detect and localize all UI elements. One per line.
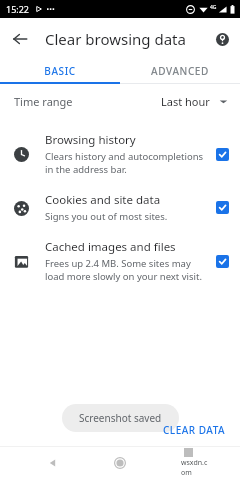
staticText: BASIC — [44, 64, 76, 78]
staticText: Signs you out of most sites. — [45, 210, 168, 223]
staticText: Last hour — [161, 94, 210, 109]
button[interactable]: Checked — [216, 201, 229, 214]
staticText: Clear browsing data — [45, 29, 186, 49]
staticText: in the address bar. — [45, 163, 127, 176]
button[interactable]: Browsing history — [0, 124, 240, 184]
staticText: 4G — [210, 4, 217, 11]
button[interactable]: Time range — [0, 84, 240, 118]
button[interactable]: Home — [105, 448, 135, 478]
staticText: Cookies and site data — [45, 192, 161, 208]
button[interactable]: BASIC — [0, 60, 120, 82]
button[interactable]: Cookies and site data — [0, 184, 240, 231]
staticText: Time range — [14, 94, 73, 109]
staticText: ADVANCED — [151, 64, 209, 78]
button[interactable]: Back — [4, 23, 36, 55]
button[interactable]: Checked — [216, 148, 229, 161]
button[interactable]: CLEAR DATA — [157, 420, 232, 440]
button[interactable]: ADVANCED — [120, 60, 240, 82]
button[interactable]: Back — [38, 448, 68, 478]
button[interactable]: Recent apps — [173, 448, 203, 478]
button[interactable]: Checked — [216, 255, 229, 268]
staticText: Screenshot saved — [79, 411, 162, 425]
staticText: 15:22 — [6, 3, 30, 15]
staticText: Cached images and files — [45, 239, 176, 255]
staticText: Frees up 2.4 MB. Some sites may — [45, 257, 191, 270]
staticText: CLEAR DATA — [163, 423, 226, 437]
button[interactable]: Cached images and files — [0, 231, 240, 291]
staticText: Clears history and autocompletions — [45, 150, 204, 163]
staticText: Browsing history — [45, 132, 136, 148]
staticText: wsxdn.com — [181, 458, 211, 478]
staticText: load more slowly on your next visit. — [45, 270, 202, 283]
button[interactable]: Help — [208, 25, 236, 53]
